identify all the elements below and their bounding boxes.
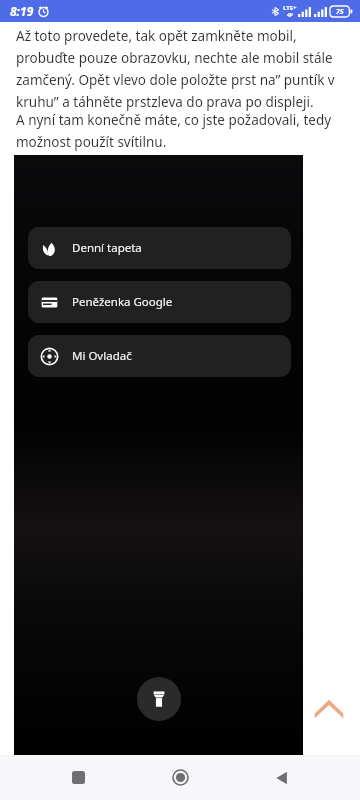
staticText: A nyní tam konečně máte, co jste požadov… [16,111,346,151]
button[interactable]: Flashlight [137,677,181,721]
staticText: Až toto provedete, tak opět zamkněte mob… [16,27,346,111]
staticText: 4P [287,12,293,19]
staticText: Mi Ovladač [72,348,132,364]
staticText: 8:19 [10,3,34,19]
staticText: Denní tapeta [72,240,142,256]
button[interactable]: Back [258,755,306,800]
button[interactable]: Mi Ovladač [28,335,291,377]
button[interactable]: Scroll to top [306,685,352,731]
button[interactable]: Home [156,755,204,800]
button[interactable]: Recent apps [54,755,102,800]
button[interactable]: Peněženka Google [28,281,291,323]
staticText: Peněženka Google [72,294,173,310]
staticText: LTE+ [283,4,297,12]
staticText: 75 [336,7,344,17]
button[interactable]: Denní tapeta [28,227,291,269]
